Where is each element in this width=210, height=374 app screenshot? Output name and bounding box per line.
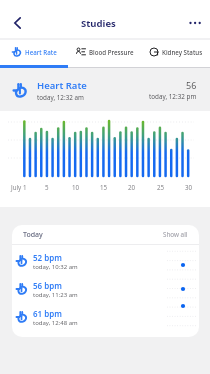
button[interactable]: Today: [12, 225, 199, 244]
button[interactable]: Back: [3, 9, 31, 37]
button[interactable]: Kidney Status: [142, 39, 210, 65]
staticText: 56: [186, 79, 197, 91]
staticText: July: [11, 183, 22, 191]
button[interactable]: Heart Rate: [0, 39, 68, 65]
staticText: today, 12:48 am: [33, 319, 78, 327]
staticText: today, 12:32 pm: [149, 92, 197, 101]
button[interactable]: More options: [182, 11, 206, 35]
staticText: 25: [157, 183, 165, 191]
staticText: Heart Rate: [25, 48, 57, 56]
staticText: Heart Rate: [37, 79, 87, 92]
staticText: Studies: [81, 17, 116, 30]
staticText: 56 bpm: [33, 280, 62, 291]
staticText: 10: [72, 183, 80, 191]
staticText: today, 11:23 am: [33, 291, 78, 299]
staticText: 20: [128, 183, 136, 191]
staticText: 61 bpm: [33, 308, 62, 319]
button[interactable]: 52 bpm: [12, 247, 199, 275]
staticText: 5: [45, 183, 49, 191]
staticText: Kidney Status: [162, 48, 203, 56]
staticText: Blood Pressure: [89, 48, 134, 56]
staticText: 15: [100, 183, 108, 191]
staticText: today, 12:32 am: [37, 93, 84, 102]
staticText: today, 10:32 am: [33, 263, 78, 271]
staticText: 1: [23, 183, 27, 191]
staticText: Today: [23, 230, 43, 240]
staticText: Show all: [163, 230, 188, 239]
staticText: 52 bpm: [33, 252, 62, 263]
button[interactable]: Blood Pressure: [68, 39, 142, 65]
button[interactable]: 61 bpm: [12, 303, 199, 331]
staticText: 30: [185, 183, 193, 191]
button[interactable]: 56 bpm: [12, 275, 199, 303]
